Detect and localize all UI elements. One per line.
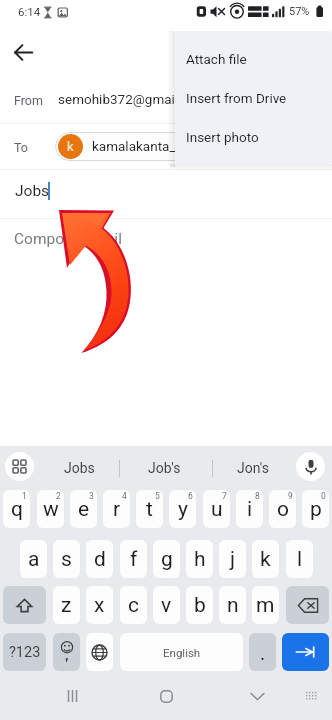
staticText: Jobs: [15, 182, 50, 200]
button[interactable]: n: [219, 586, 246, 624]
button[interactable]: Back: [5, 34, 41, 70]
staticText: o: [277, 497, 289, 522]
staticText: Jobs: [64, 460, 95, 476]
button[interactable]: p: [302, 490, 329, 528]
button[interactable]: Recent apps: [56, 672, 88, 720]
staticText: h: [194, 547, 206, 572]
staticText: a: [28, 547, 40, 572]
staticText: y: [178, 497, 188, 522]
staticText: kamalakanta_mohapatra: [92, 138, 241, 154]
staticText: f: [130, 547, 138, 572]
staticText: 0: [321, 491, 326, 501]
staticText: 5: [155, 491, 160, 501]
staticText: j: [230, 547, 236, 572]
button[interactable]: d: [86, 540, 113, 578]
button[interactable]: u: [203, 490, 230, 528]
staticText: b: [194, 593, 206, 618]
staticText: 3: [89, 491, 94, 501]
staticText: Jon's: [237, 460, 269, 476]
staticText: k: [260, 547, 271, 572]
button[interactable]: m: [252, 586, 279, 624]
button[interactable]: q: [3, 490, 30, 528]
staticText: q: [11, 497, 23, 522]
staticText: r: [113, 497, 121, 522]
staticText: Job's: [148, 460, 181, 476]
staticText: n: [227, 593, 239, 618]
button[interactable]: j: [219, 540, 246, 578]
button[interactable]: e: [70, 490, 97, 528]
button[interactable]: ?123: [3, 633, 46, 671]
staticText: .: [260, 641, 266, 664]
staticText: t: [146, 497, 153, 522]
button[interactable]: c: [120, 586, 147, 624]
button[interactable]: h: [186, 540, 213, 578]
staticText: 2: [56, 491, 61, 501]
button[interactable]: g: [153, 540, 180, 578]
staticText: 6: [188, 491, 193, 501]
button[interactable]: Enter: [282, 633, 329, 671]
staticText: i: [247, 497, 253, 522]
staticText: g: [161, 547, 173, 572]
staticText: Insert photo: [186, 129, 259, 145]
button[interactable]: Emoji: [53, 633, 80, 671]
button[interactable]: b: [186, 586, 213, 624]
button[interactable]: Job's: [125, 446, 204, 490]
staticText: ?123: [9, 644, 41, 661]
button[interactable]: Insert photo: [175, 117, 332, 156]
button[interactable]: Backspace: [286, 586, 329, 624]
staticText: To: [14, 140, 28, 155]
button[interactable]: Jobs: [40, 446, 119, 490]
button[interactable]: Change language: [86, 633, 113, 671]
button[interactable]: z: [53, 586, 80, 624]
staticText: Attach file: [186, 51, 247, 67]
button[interactable]: w: [37, 490, 64, 528]
staticText: v: [161, 593, 172, 618]
staticText: x: [94, 593, 105, 618]
button[interactable]: o: [269, 490, 296, 528]
staticText: 57%: [289, 5, 310, 18]
button[interactable]: Hide keyboard: [241, 672, 273, 720]
button[interactable]: Attach file: [175, 39, 332, 78]
button[interactable]: i: [236, 490, 263, 528]
button[interactable]: Insert from Drive: [175, 78, 332, 117]
staticText: From: [14, 93, 43, 108]
button[interactable]: y: [169, 490, 196, 528]
button[interactable]: .: [249, 633, 276, 671]
staticText: semohib372@gmail.com: [58, 91, 209, 107]
staticText: p: [310, 497, 322, 522]
button[interactable]: k: [252, 540, 279, 578]
button[interactable]: x: [86, 586, 113, 624]
button[interactable]: Voice input: [296, 452, 325, 481]
button[interactable]: Home: [150, 672, 182, 720]
staticText: Insert from Drive: [186, 90, 287, 106]
button[interactable]: Keyboard toolbar: [5, 452, 34, 481]
button[interactable]: r: [103, 490, 130, 528]
staticText: 9: [288, 491, 293, 501]
staticText: l: [297, 547, 303, 572]
button[interactable]: Switch keyboard: [296, 672, 326, 720]
staticText: e: [78, 497, 90, 522]
staticText: 1: [22, 491, 27, 501]
staticText: 8: [255, 491, 260, 501]
staticText: z: [61, 593, 72, 618]
button[interactable]: a: [20, 540, 47, 578]
button[interactable]: Jon's: [218, 446, 287, 490]
staticText: w: [43, 497, 59, 522]
staticText: 6:14: [18, 5, 41, 18]
staticText: u: [211, 497, 223, 522]
staticText: 7: [222, 491, 227, 501]
staticText: m: [256, 593, 275, 618]
staticText: English: [163, 646, 201, 659]
button[interactable]: t: [136, 490, 163, 528]
button[interactable]: f: [120, 540, 147, 578]
button[interactable]: s: [53, 540, 80, 578]
staticText: 4: [122, 491, 127, 501]
staticText: Compose email: [14, 230, 122, 248]
staticText: s: [61, 547, 72, 572]
staticText: d: [94, 547, 106, 572]
button[interactable]: v: [153, 586, 180, 624]
button[interactable]: English: [120, 633, 243, 671]
staticText: k: [67, 139, 74, 154]
button[interactable]: l: [286, 540, 313, 578]
button[interactable]: Shift: [3, 586, 46, 624]
